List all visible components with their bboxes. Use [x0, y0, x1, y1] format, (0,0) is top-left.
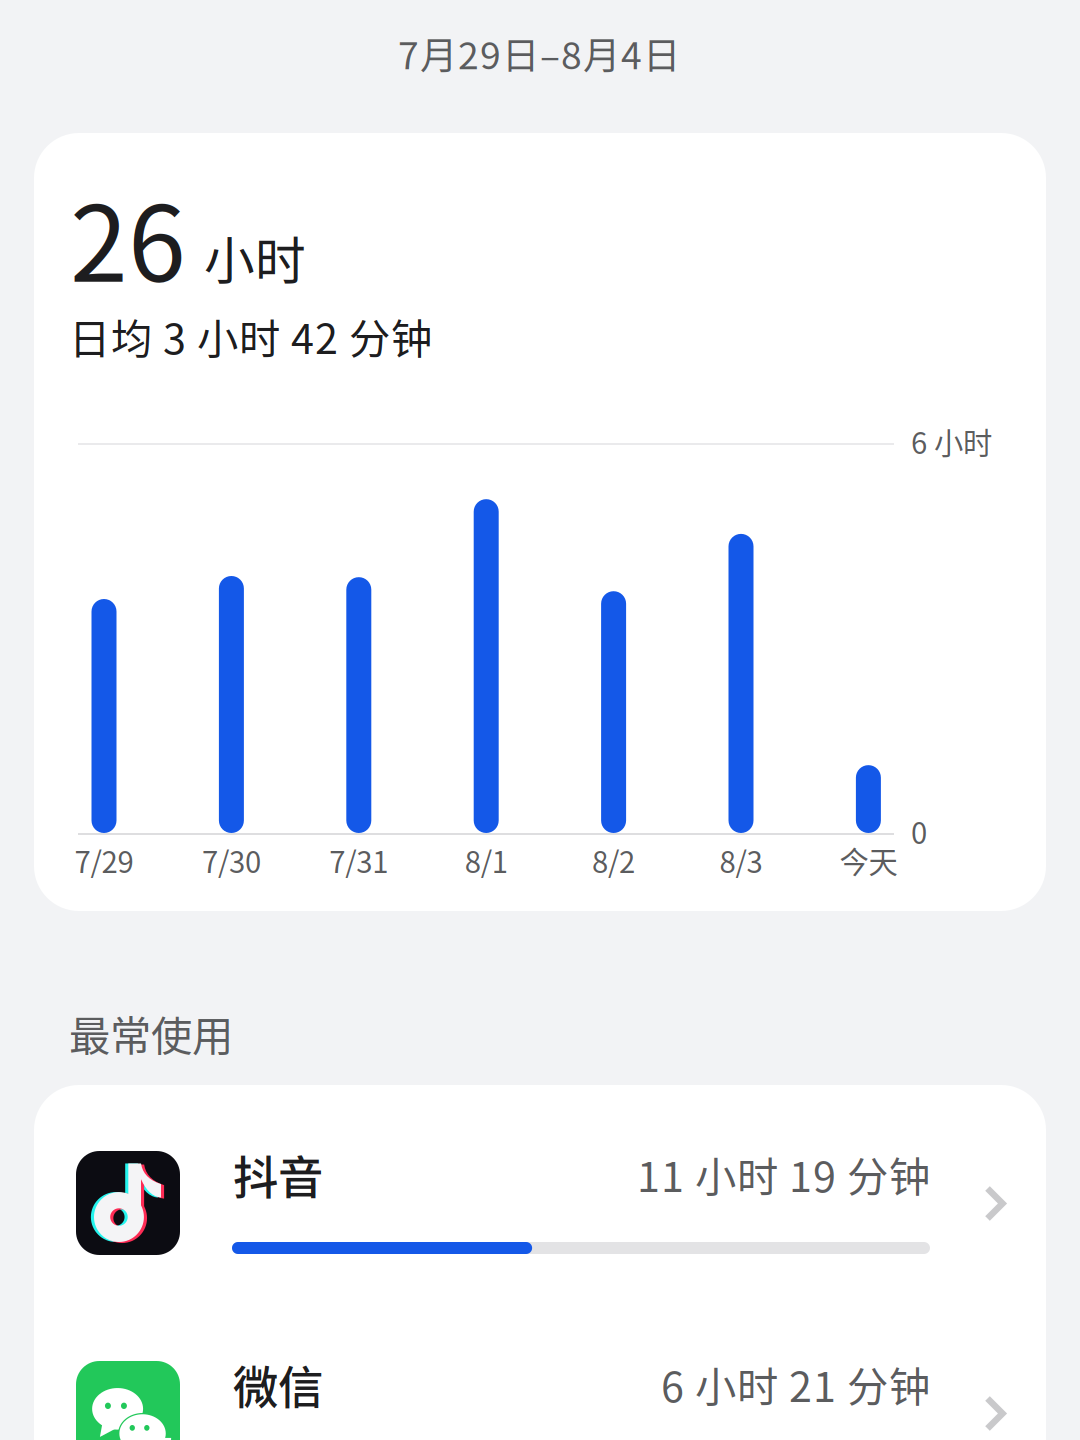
staticText: 抖音 — [233, 1142, 323, 1208]
button[interactable]: 微信 — [34, 1295, 1046, 1440]
staticText: 6 小时 21 分钟 — [661, 1354, 930, 1414]
staticText: 6 小时 — [911, 420, 992, 462]
staticText: 7/30 — [202, 839, 261, 881]
staticText: 11 小时 19 分钟 — [637, 1144, 930, 1204]
staticText: 日均 3 小时 42 分钟 — [69, 306, 432, 366]
staticText: 8/1 — [465, 839, 508, 881]
staticText: 小时 — [204, 221, 306, 294]
staticText: 最常使用 — [69, 1003, 233, 1063]
staticText: 8/3 — [719, 839, 762, 881]
staticText: 7月29日–8月4日 — [398, 26, 680, 80]
staticText: 26 — [70, 161, 186, 312]
staticText: 8/2 — [592, 839, 635, 881]
button[interactable]: 抖音 — [34, 1085, 1046, 1295]
staticText: 7/29 — [74, 839, 133, 881]
staticText: 微信 — [233, 1352, 323, 1418]
staticText: 今天 — [839, 839, 897, 881]
staticText: 0 — [911, 810, 927, 852]
staticText: 7/31 — [329, 839, 388, 881]
